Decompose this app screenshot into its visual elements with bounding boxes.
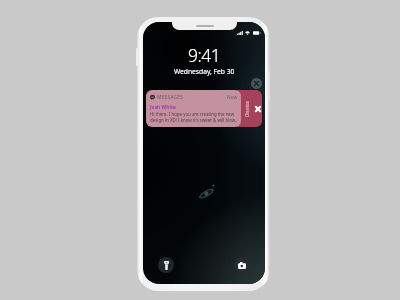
staticText: Hi there, I hope you are creating the ne…: [150, 111, 238, 123]
staticText: Josh White: [150, 104, 176, 111]
button[interactable]: Flashlight: [158, 257, 174, 273]
staticText: Now: [227, 94, 238, 101]
button[interactable]: Clear notifications: [251, 78, 262, 89]
button[interactable]: Dismiss: [232, 90, 262, 127]
button[interactable]: Camera: [234, 257, 250, 273]
staticText: Dismiss: [244, 101, 250, 117]
staticText: 9:41: [188, 43, 221, 67]
staticText: Wednesday, Feb 30: [174, 67, 235, 76]
staticText: MESSAGES: [157, 94, 184, 101]
button[interactable]: MESSAGES: [146, 90, 241, 127]
